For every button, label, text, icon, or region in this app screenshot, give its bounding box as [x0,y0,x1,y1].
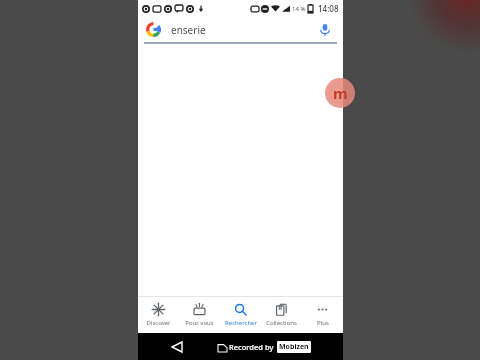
staticText: Rechercher [225,319,257,327]
staticText: 14 % [292,5,306,13]
staticText: Collections [266,319,297,327]
staticText: Discover [146,319,171,327]
button[interactable]: Recorder overlay [325,78,355,108]
button[interactable]: Pour vous [179,297,220,333]
button[interactable]: Voice search [315,20,335,40]
staticText: m [333,83,348,103]
button[interactable]: Plus [302,297,343,333]
button[interactable]: Rechercher [220,297,261,333]
button[interactable]: Collections [261,297,302,333]
button[interactable]: enserie [138,17,343,42]
button[interactable]: Discover [138,297,179,333]
staticText: 14:08 [318,3,339,14]
staticText: enserie [171,23,315,37]
staticText: Mobizen [279,342,309,352]
staticText: Pour vous [185,319,214,327]
button[interactable]: Back [166,336,188,358]
staticText: Recorded by [229,342,274,352]
staticText: Plus [317,319,329,327]
